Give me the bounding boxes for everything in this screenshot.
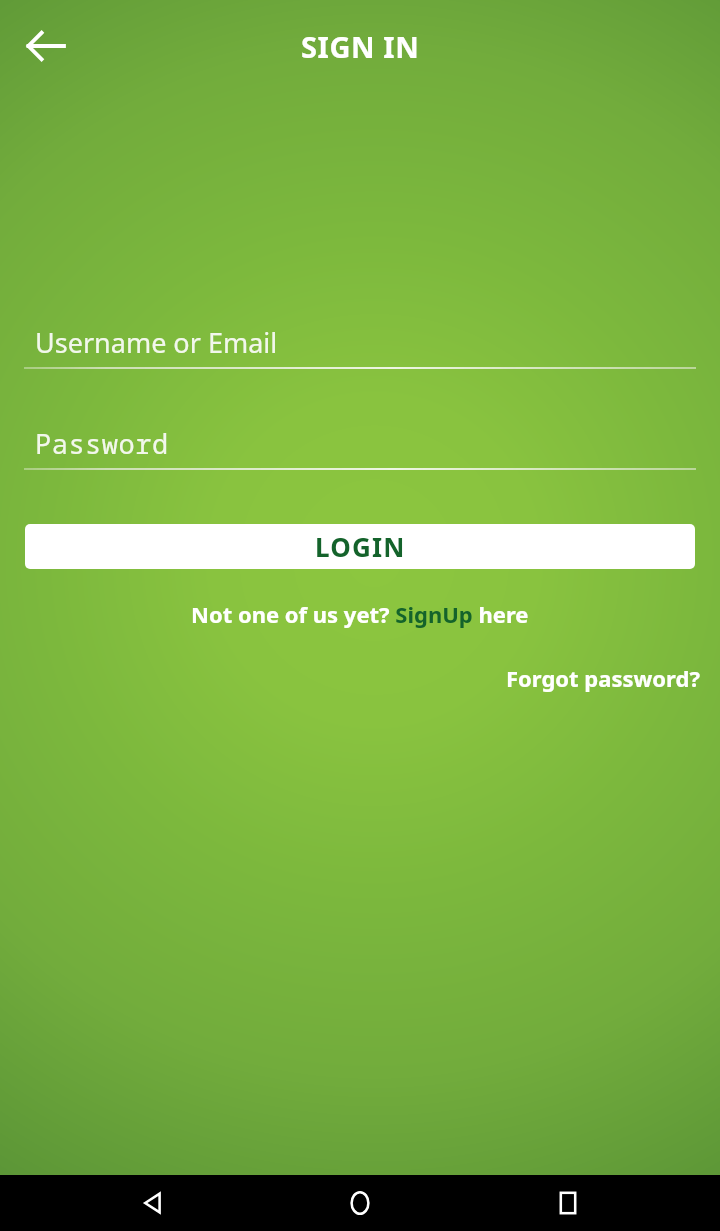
button[interactable]: LOGIN [25, 524, 695, 569]
button[interactable]: Username or Email [24, 324, 696, 369]
staticText: SIGN IN [301, 27, 420, 66]
button[interactable]: Not one of us yet? SignUp here [0, 599, 720, 629]
button[interactable]: Back [14, 14, 78, 78]
staticText: LOGIN [315, 529, 406, 564]
button[interactable]: Home [305, 1175, 415, 1231]
staticText: Password [35, 425, 169, 459]
staticText: Not one of us yet? SignUp here [191, 599, 529, 629]
button[interactable]: Password [24, 425, 696, 470]
staticText: Username or Email [35, 324, 278, 358]
button[interactable]: Forgot password? [506, 663, 700, 693]
button[interactable]: Recent apps [513, 1175, 623, 1231]
staticText: Forgot password? [506, 663, 700, 693]
button[interactable]: Back [98, 1175, 208, 1231]
